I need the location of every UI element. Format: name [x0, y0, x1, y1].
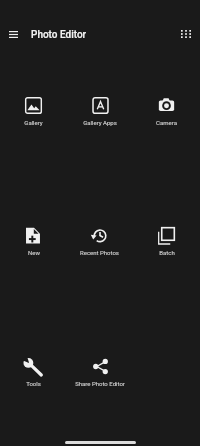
button[interactable]: New [25, 227, 42, 256]
button[interactable]: Share Photo Editor [75, 358, 125, 387]
button[interactable]: Recent Photos [80, 227, 119, 256]
button[interactable]: Apps grid [172, 20, 200, 48]
button[interactable]: Menu [0, 20, 27, 48]
staticText: Photo Editor [31, 29, 87, 41]
button[interactable]: Gallery [24, 97, 43, 126]
staticText: Share Photo Editor [75, 380, 125, 387]
button[interactable]: Tools [25, 358, 42, 387]
button[interactable]: Camera [156, 97, 177, 126]
staticText: New [28, 249, 40, 256]
staticText: Batch [159, 249, 175, 256]
staticText: Gallery [24, 119, 43, 126]
button[interactable]: Gallery Apps [83, 97, 117, 126]
staticText: Gallery Apps [83, 119, 117, 126]
staticText: Camera [156, 119, 177, 126]
staticText: Tools [26, 380, 41, 387]
staticText: Recent Photos [80, 249, 119, 256]
button[interactable]: Batch [158, 227, 175, 256]
